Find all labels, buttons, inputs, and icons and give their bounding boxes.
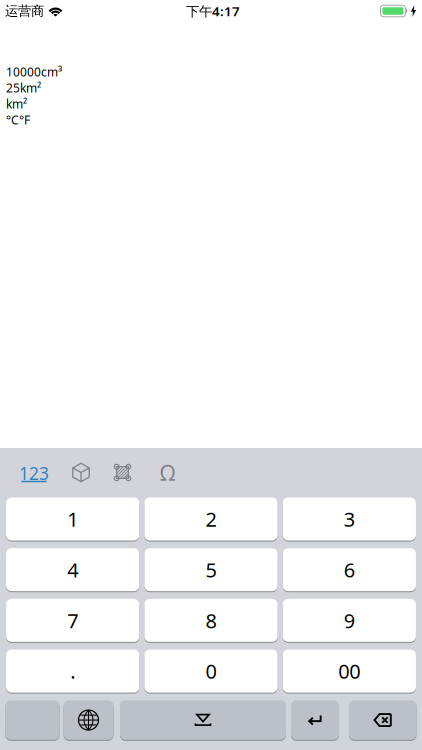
staticText: 3	[344, 506, 355, 532]
staticText: Ω	[160, 458, 175, 487]
staticText: 10000cm³	[6, 64, 62, 80]
staticText: 5	[205, 556, 216, 583]
button[interactable]: 9	[283, 599, 416, 642]
button[interactable]: Symbols	[139, 449, 196, 495]
button[interactable]: 6	[283, 548, 416, 591]
button[interactable]: Return	[291, 700, 339, 740]
button[interactable]: 3	[283, 497, 416, 540]
button[interactable]: 00	[283, 650, 416, 693]
staticText: 6	[344, 556, 355, 583]
staticText: 4	[67, 556, 78, 583]
staticText: 9	[344, 607, 355, 634]
button[interactable]: 1	[6, 497, 139, 540]
staticText: 7	[67, 607, 78, 634]
staticText: 运营商	[5, 3, 44, 19]
staticText: 下午4:17	[186, 2, 240, 20]
button[interactable]: Next keyboard	[63, 700, 113, 740]
button[interactable]: Numbers	[12, 449, 56, 495]
button[interactable]: Blank	[5, 700, 59, 740]
button[interactable]: .	[6, 650, 139, 693]
staticText: 0	[205, 658, 216, 684]
button[interactable]: 8	[144, 599, 278, 642]
staticText: 25km²	[6, 80, 41, 96]
button[interactable]: 5	[144, 548, 278, 591]
button[interactable]: 2	[144, 497, 278, 540]
staticText: 00	[338, 658, 360, 684]
button[interactable]: 7	[6, 599, 139, 642]
button[interactable]: Volume units	[56, 449, 106, 495]
staticText: 123	[19, 462, 49, 485]
button[interactable]: Area units	[106, 449, 139, 495]
staticText: km²	[6, 96, 27, 112]
staticText: 2	[205, 506, 216, 532]
button[interactable]: Dismiss keyboard	[120, 700, 286, 740]
staticText: 8	[205, 607, 216, 634]
button[interactable]: Delete	[349, 700, 416, 740]
staticText: 1	[67, 506, 78, 532]
staticText: .	[70, 658, 75, 684]
staticText: °C°F	[6, 112, 30, 128]
button[interactable]: 4	[6, 548, 139, 591]
button[interactable]: 0	[144, 650, 278, 693]
